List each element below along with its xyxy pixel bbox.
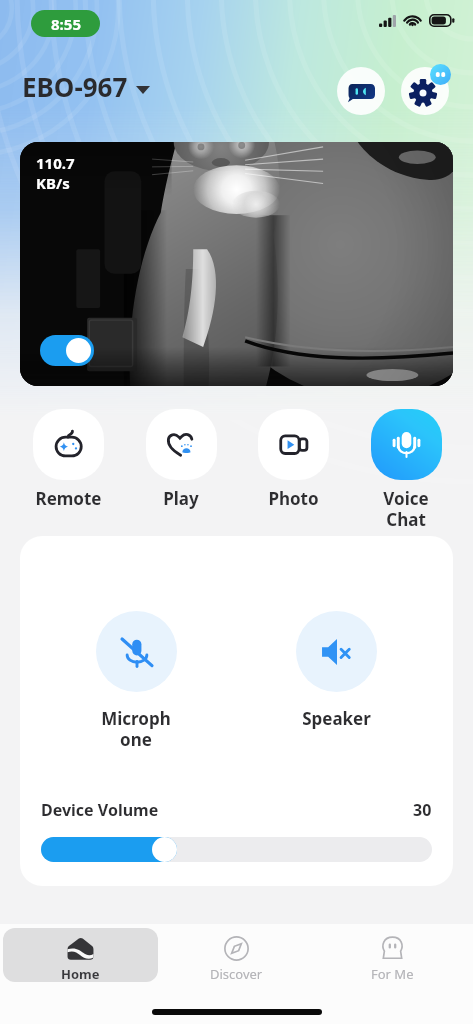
staticText: Play [163, 487, 199, 510]
staticText: EBO-967 [22, 69, 128, 104]
button[interactable]: Voice Chat [362, 409, 450, 527]
button[interactable]: Toggle stream [40, 335, 94, 366]
staticText: Home [61, 965, 100, 982]
button[interactable]: Home [3, 928, 158, 982]
staticText: Device Volume [41, 799, 159, 821]
staticText: KB/s [36, 173, 70, 193]
button[interactable]: Microph one [86, 611, 186, 751]
button[interactable]: Remote [24, 409, 112, 510]
button[interactable]: Speaker [286, 611, 386, 730]
staticText: Speaker [302, 707, 371, 730]
staticText: Discover [210, 965, 263, 982]
button[interactable]: For Me [314, 928, 470, 982]
button[interactable]: Live camera view [20, 142, 453, 386]
staticText: 8:55 [51, 14, 81, 34]
staticText: Photo [268, 487, 319, 510]
button[interactable]: EBO-967 [22, 69, 150, 104]
staticText: 110.7 [36, 153, 75, 173]
button[interactable]: Settings [399, 65, 451, 117]
staticText: Voice Chat [383, 487, 429, 527]
staticText: For Me [371, 965, 414, 982]
button[interactable]: Device volume slider [41, 837, 432, 862]
staticText: 30 [413, 799, 432, 821]
button[interactable]: Messages [336, 66, 386, 116]
button[interactable]: Discover [158, 928, 314, 982]
staticText: Remote [35, 487, 102, 510]
staticText: Microph one [101, 707, 171, 751]
button[interactable]: Play [137, 409, 225, 510]
button[interactable]: Photo [249, 409, 337, 510]
